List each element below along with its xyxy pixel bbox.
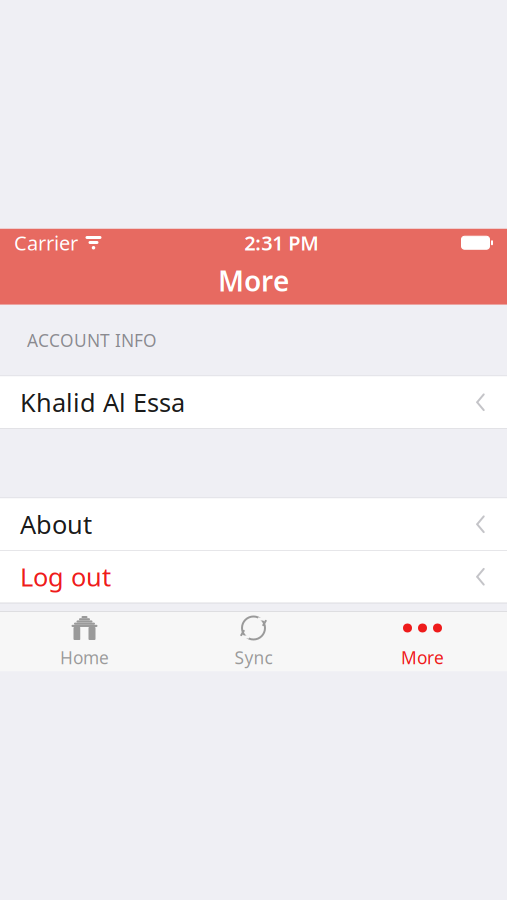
staticText: Khalid Al Essa [20,385,185,419]
button[interactable]: Sync [169,612,338,671]
staticText: More [218,262,289,299]
staticText: Sync [234,646,272,669]
staticText: Home [60,646,109,669]
staticText: About [20,507,92,541]
button[interactable]: More [338,612,507,671]
staticText: More [401,646,444,669]
button[interactable]: About [0,498,507,550]
button[interactable]: Log out [0,551,507,603]
staticText: ACCOUNT INFO [27,329,157,352]
button[interactable]: Khalid Al Essa [0,376,507,428]
button[interactable]: Home [0,612,169,671]
staticText: Log out [20,560,111,593]
staticText: 2:31 PM [244,229,319,256]
staticText: Carrier [14,229,78,256]
